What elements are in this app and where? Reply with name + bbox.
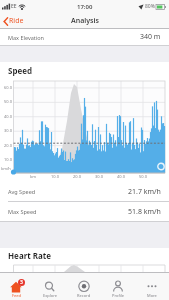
staticText: km [25,174,41,179]
staticText: Speed [8,65,33,76]
staticText: EE [11,3,17,10]
staticText: 340 m [140,32,161,42]
staticText: 17:00 [77,3,93,11]
staticText: More [147,293,157,298]
staticText: 10.0 [4,157,12,162]
button[interactable]: Record [67,273,101,300]
staticText: 50.0 [135,174,151,179]
button[interactable]: Max Speed [0,202,169,222]
staticText: 3 [20,279,23,286]
staticText: 40.0 [113,174,129,179]
staticText: Feed [12,293,22,298]
staticText: Record [77,293,91,298]
staticText: 40.0 [4,114,12,119]
staticText: Ride [9,16,24,26]
staticText: 60.0 [4,85,12,90]
staticText: 80% [145,3,155,10]
staticText: 30.0 [4,128,12,133]
button[interactable]: Ride [3,16,24,26]
staticText: Profile [112,293,125,298]
staticText: Max Speed [8,208,37,215]
staticText: Explore [43,293,58,298]
button[interactable]: Explore [33,273,67,300]
button[interactable]: Profile [101,273,135,300]
staticText: 51.8 km/h [128,207,161,217]
staticText: Analysis [71,16,99,26]
staticText: Max Elevation [8,34,44,41]
staticText: 10.0 [47,174,63,179]
button[interactable]: Avg Speed [0,182,169,202]
staticText: Heart Rate [8,250,52,261]
button[interactable]: Max Elevation [0,29,169,46]
button[interactable]: More [135,273,169,300]
staticText: Avg Speed [8,188,36,195]
staticText: 20.0 [69,174,85,179]
staticText: 20.0 [4,143,12,148]
button[interactable]: 3 [0,273,33,300]
staticText: 50.0 [4,99,12,104]
staticText: km/h [1,166,11,171]
staticText: 30.0 [91,174,107,179]
staticText: 21.7 km/h [128,187,161,197]
